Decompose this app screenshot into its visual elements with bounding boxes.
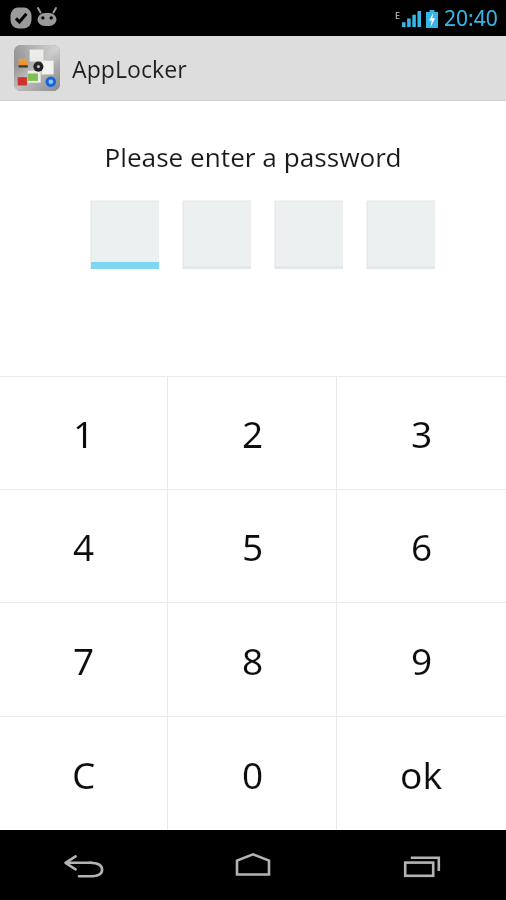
staticText: 6	[411, 521, 433, 571]
button[interactable]: 2	[168, 377, 337, 489]
button[interactable]: 6	[337, 490, 506, 602]
staticText: 3	[411, 408, 433, 458]
button[interactable]: 0	[168, 717, 337, 830]
button[interactable]: 8	[168, 603, 337, 716]
staticText: 7	[73, 635, 95, 685]
staticText: C	[72, 749, 96, 799]
staticText: 2	[242, 408, 264, 458]
staticText: 8	[242, 635, 264, 685]
staticText: Please enter a password	[0, 139, 506, 174]
staticText: 0	[242, 749, 264, 799]
button[interactable]: 3	[337, 377, 506, 489]
staticText: 1	[73, 408, 95, 458]
staticText: ok	[400, 749, 443, 799]
button[interactable]: 5	[168, 490, 337, 602]
staticText: 20:40	[444, 4, 498, 33]
button[interactable]: 1	[0, 377, 168, 489]
staticText: 9	[411, 635, 433, 685]
staticText: 5	[242, 521, 264, 571]
staticText: AppLocker	[72, 53, 187, 84]
button[interactable]: Back	[0, 830, 168, 900]
staticText: E	[395, 9, 401, 21]
button[interactable]	[91, 201, 159, 269]
button[interactable]: Home	[168, 830, 337, 900]
button[interactable]: ok	[337, 717, 506, 830]
button[interactable]: Recent apps	[337, 830, 506, 900]
button[interactable]: 4	[0, 490, 168, 602]
button[interactable]: 7	[0, 603, 168, 716]
staticText: 4	[73, 521, 95, 571]
button[interactable]: C	[0, 717, 168, 830]
button[interactable]: 9	[337, 603, 506, 716]
